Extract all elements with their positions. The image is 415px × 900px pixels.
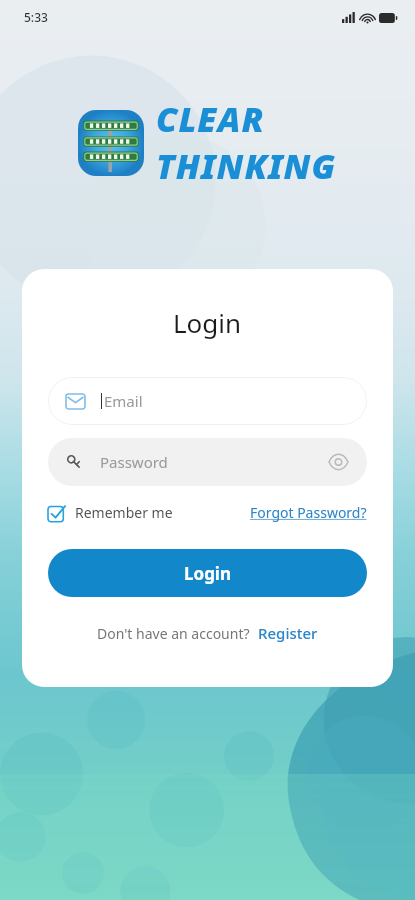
button[interactable]: Remember me (48, 503, 173, 522)
button[interactable]: Show password (327, 451, 349, 473)
staticText: Don't have an account? (97, 624, 250, 643)
staticText: Password (100, 452, 327, 472)
button[interactable]: Register (258, 623, 318, 643)
staticText: Login (173, 305, 242, 340)
button[interactable]: Forgot Password? (250, 503, 367, 522)
button[interactable]: Password (48, 438, 367, 486)
staticText: Remember me (75, 503, 173, 522)
staticText: Login (184, 562, 232, 585)
staticText: CLEAR (156, 96, 265, 142)
staticText: Email (104, 391, 143, 411)
staticText: Forgot Password? (250, 503, 367, 522)
staticText: Register (258, 623, 318, 643)
button[interactable]: Login (48, 549, 367, 597)
staticText: 5:33 (24, 9, 48, 25)
button[interactable]: Email (48, 377, 367, 425)
staticText: THINKING (156, 143, 337, 189)
